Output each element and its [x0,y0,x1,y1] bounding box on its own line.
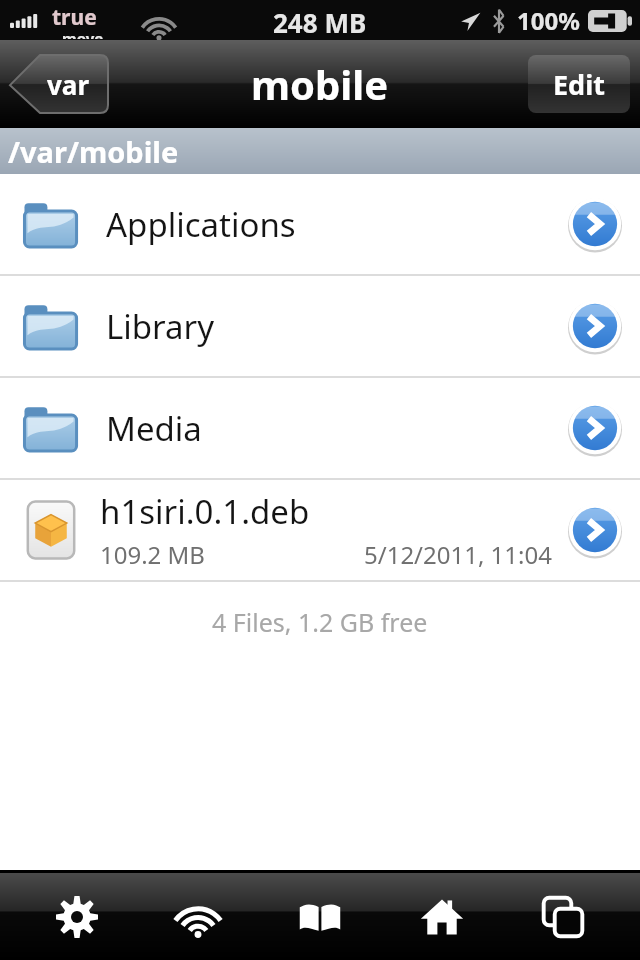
button[interactable]: Settings [32,875,122,959]
button[interactable]: Open Applications [566,193,624,255]
staticText: 100% [517,4,580,37]
staticText: true [52,3,97,32]
staticText: Media [106,406,566,451]
staticText: h1siri.0.1.deb [100,489,310,534]
button[interactable]: Pages [518,875,608,959]
button[interactable]: Open Library [566,295,624,357]
button[interactable]: var [8,55,108,113]
button[interactable]: Open Media [566,397,624,459]
staticText: 5/12/2011, 11:04 [364,538,552,571]
staticText: var [47,67,90,102]
staticText: Applications [106,202,566,247]
staticText: Edit [553,66,605,103]
button[interactable]: Bookmarks [275,875,365,959]
button[interactable]: Media [0,378,640,478]
button[interactable]: Open h1siri.0.1.deb [566,499,624,561]
staticText: /var/mobile [8,132,179,171]
button[interactable]: h1siri.0.1.deb [0,480,640,580]
staticText: 109.2 MB [100,538,205,571]
button[interactable]: Edit [528,55,630,113]
button[interactable]: Wi-Fi [153,875,243,959]
staticText: 4 Files, 1.2 GB free [212,605,428,639]
staticText: 248 MB [273,5,367,40]
staticText: Library [106,304,566,349]
staticText: move [62,28,104,39]
staticText: mobile [251,57,389,111]
button[interactable]: Library [0,276,640,376]
button[interactable]: Applications [0,174,640,274]
button[interactable]: Home [397,875,487,959]
